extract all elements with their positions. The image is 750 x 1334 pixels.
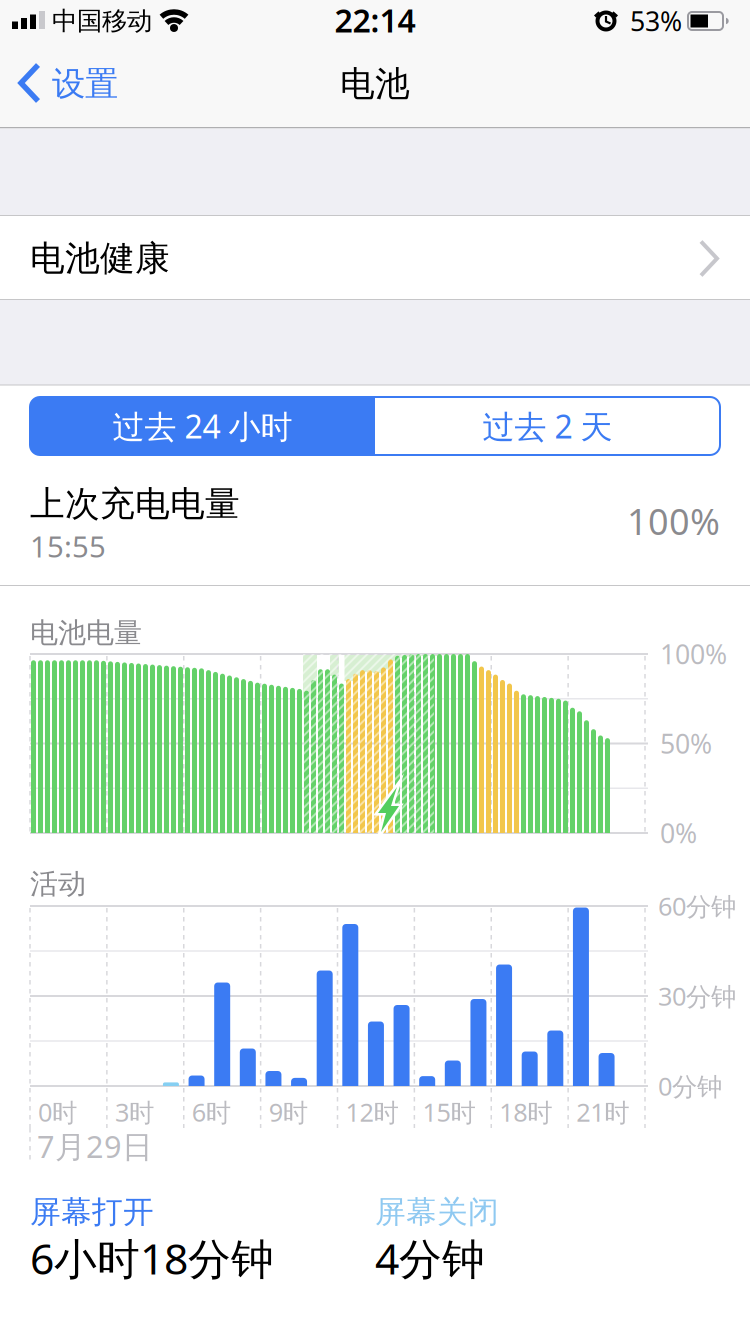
staticText: 电池 <box>340 63 410 105</box>
staticText: 60分钟 <box>658 889 736 923</box>
staticText: 设置 <box>52 63 118 104</box>
button[interactable]: 返回设置 <box>0 40 140 128</box>
staticText: 18时 <box>499 1095 552 1129</box>
staticText: 0分钟 <box>658 1069 722 1103</box>
staticText: 15:55 <box>30 526 106 565</box>
staticText: 9时 <box>269 1095 308 1129</box>
staticText: 屏幕打开 <box>30 1193 154 1231</box>
staticText: 上次充电电量 <box>30 483 240 525</box>
staticText: 0% <box>660 815 697 851</box>
staticText: 22:14 <box>334 0 415 41</box>
staticText: 过去 24 小时 <box>112 405 292 447</box>
staticText: 30分钟 <box>658 979 736 1013</box>
button[interactable]: 过去 2 天 <box>375 397 720 455</box>
button[interactable]: 电池健康 <box>0 216 750 299</box>
staticText: 6小时18分钟 <box>30 1230 274 1286</box>
staticText: 15时 <box>422 1095 475 1129</box>
staticText: 3时 <box>115 1095 154 1129</box>
staticText: 100% <box>627 497 720 545</box>
staticText: 屏幕关闭 <box>375 1193 499 1231</box>
staticText: 50% <box>660 726 712 761</box>
staticText: 6时 <box>192 1095 231 1129</box>
staticText: 12时 <box>345 1095 398 1129</box>
staticText: 活动 <box>30 867 86 901</box>
staticText: 21时 <box>576 1095 629 1129</box>
staticText: 4分钟 <box>375 1230 485 1286</box>
staticText: 100% <box>660 636 727 672</box>
staticText: 7月29日 <box>37 1126 153 1166</box>
staticText: 53% <box>630 3 682 39</box>
staticText: 电池健康 <box>30 237 170 280</box>
staticText: 过去 2 天 <box>482 405 612 447</box>
staticText: 电池电量 <box>30 616 142 650</box>
staticText: 中国移动 <box>52 5 152 36</box>
button[interactable]: 过去 24 小时 <box>30 397 375 455</box>
staticText: 0时 <box>38 1095 77 1129</box>
